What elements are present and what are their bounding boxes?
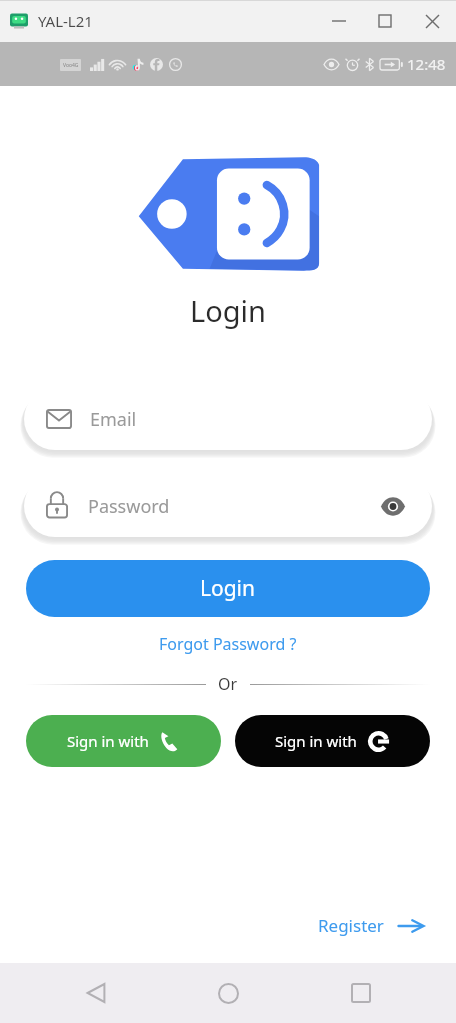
button[interactable]: Maximize xyxy=(362,0,408,42)
button[interactable]: Home xyxy=(191,963,265,1023)
staticText: YAL-L21 xyxy=(38,11,93,31)
button[interactable]: Forgot Password ? xyxy=(151,629,305,659)
staticText: Sign in with xyxy=(275,731,357,751)
button[interactable]: Password xyxy=(24,475,432,537)
button[interactable]: Sign in with xyxy=(26,715,221,767)
button[interactable]: Sign in with xyxy=(235,715,430,767)
button[interactable]: Close xyxy=(408,0,456,42)
button[interactable]: Back xyxy=(59,963,133,1023)
button[interactable]: Register xyxy=(310,908,432,943)
staticText: Login xyxy=(190,291,266,330)
button[interactable]: Recents xyxy=(324,963,398,1023)
staticText: Sign in with xyxy=(67,731,149,751)
button[interactable]: Show password xyxy=(378,491,408,521)
staticText: Email xyxy=(90,407,137,432)
staticText: Or xyxy=(218,673,238,695)
button[interactable]: Login xyxy=(26,560,430,617)
staticText: Register xyxy=(318,914,384,937)
button[interactable]: Email xyxy=(24,388,432,450)
staticText: Forgot Password ? xyxy=(159,633,297,655)
staticText: Login xyxy=(200,574,256,603)
button[interactable]: Minimize xyxy=(316,0,362,42)
staticText: Voo4G xyxy=(63,62,79,69)
staticText: Password xyxy=(88,494,170,519)
staticText: 12:48 xyxy=(407,54,446,74)
